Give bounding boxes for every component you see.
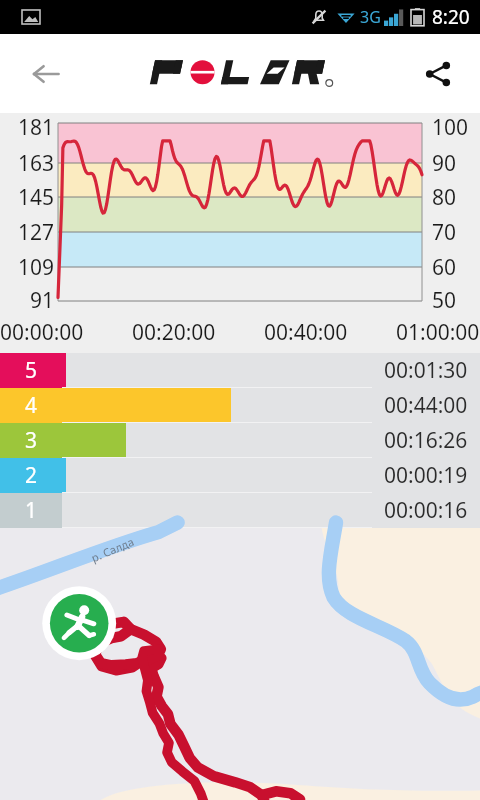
button[interactable]: Share xyxy=(410,46,466,102)
staticText: 00:16:26 xyxy=(384,426,468,455)
staticText: 50 xyxy=(432,286,457,315)
staticText: 70 xyxy=(432,218,457,247)
staticText: 3 xyxy=(25,426,38,455)
staticText: 163 xyxy=(17,149,54,178)
staticText: 60 xyxy=(432,253,457,282)
staticText: 1 xyxy=(25,496,38,525)
staticText: 01:00:00 xyxy=(396,318,480,347)
staticText: 00:40:00 xyxy=(264,318,348,347)
staticText: 00:00:16 xyxy=(384,496,468,525)
staticText: 3G xyxy=(360,6,381,28)
staticText: 00:00:00 xyxy=(0,318,84,347)
staticText: 127 xyxy=(17,218,54,247)
staticText: 00:00:19 xyxy=(384,461,468,490)
staticText: 145 xyxy=(17,183,54,212)
button[interactable]: 1 xyxy=(0,493,480,528)
button[interactable]: 3 xyxy=(0,423,480,458)
staticText: 4 xyxy=(25,391,38,420)
staticText: 109 xyxy=(17,253,54,282)
staticText: 5 xyxy=(25,356,38,385)
staticText: 00:20:00 xyxy=(132,318,216,347)
staticText: 90 xyxy=(432,149,457,178)
staticText: 00:44:00 xyxy=(384,391,468,420)
button[interactable]: 4 xyxy=(0,388,480,423)
staticText: 8:20 xyxy=(432,4,470,30)
staticText: 80 xyxy=(432,183,457,212)
staticText: 91 xyxy=(29,286,54,315)
button[interactable]: 2 xyxy=(0,458,480,493)
staticText: 100 xyxy=(432,113,469,142)
button[interactable]: Back xyxy=(18,46,74,102)
staticText: 181 xyxy=(17,113,54,142)
button[interactable]: 5 xyxy=(0,353,480,388)
staticText: 00:01:30 xyxy=(384,356,468,385)
staticText: 2 xyxy=(25,461,38,490)
staticText: р. Салда xyxy=(89,534,136,565)
